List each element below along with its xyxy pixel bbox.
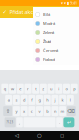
button[interactable]: y: [13, 106, 20, 116]
staticText: v: [38, 108, 40, 114]
staticText: d: [23, 97, 25, 102]
staticText: ⇧: [6, 108, 10, 114]
staticText: y: [15, 108, 17, 114]
button[interactable]: h: [44, 95, 51, 105]
staticText: Bílá: [43, 12, 50, 17]
button[interactable]: e: [17, 84, 24, 94]
staticText: □: [60, 133, 64, 138]
button[interactable]: Červená: [33, 46, 79, 55]
button[interactable]: p: [71, 84, 78, 94]
staticText: h: [46, 97, 48, 102]
button[interactable]: m: [59, 106, 66, 116]
button[interactable]: k: [59, 95, 66, 105]
button[interactable]: ?123: [5, 117, 16, 127]
staticText: ▾: [61, 1, 63, 5]
button[interactable]: r: [24, 84, 31, 94]
button[interactable]: n: [51, 106, 58, 116]
button[interactable]: w: [9, 84, 16, 94]
button[interactable]: Modrá: [33, 19, 79, 28]
staticText: Zelená: [43, 30, 54, 35]
staticText: t: [35, 86, 36, 91]
staticText: g: [38, 97, 40, 102]
button[interactable]: x: [21, 106, 28, 116]
staticText: Přidat akci: [9, 8, 34, 16]
button[interactable]: g: [36, 95, 43, 105]
button[interactable]: .: [56, 117, 63, 127]
button[interactable]: o: [63, 84, 70, 94]
staticText: e: [19, 86, 21, 91]
button[interactable]: j: [51, 95, 58, 105]
button[interactable]: ,: [16, 117, 23, 127]
staticText: ,: [19, 120, 20, 125]
button[interactable]: c: [28, 106, 35, 116]
button[interactable]: Bílá: [33, 10, 79, 19]
staticText: ⌫: [67, 108, 75, 114]
staticText: n: [54, 108, 56, 114]
button[interactable]: ⇧: [3, 106, 12, 116]
staticText: z: [42, 86, 44, 91]
staticText: f: [31, 97, 32, 102]
button[interactable]: d: [21, 95, 28, 105]
staticText: Modrá: [43, 21, 55, 26]
staticText: m: [61, 108, 65, 114]
staticText: 9:41: [70, 0, 77, 6]
staticText: Žlutá: [43, 39, 51, 44]
button[interactable]: Recents: [56, 131, 68, 140]
button[interactable]: s: [13, 95, 20, 105]
staticText: Fialová: [43, 57, 55, 62]
staticText: b: [46, 108, 48, 114]
staticText: ↵: [67, 119, 71, 125]
button[interactable]: q: [1, 84, 8, 94]
button[interactable]: l: [67, 95, 74, 105]
button[interactable]: Home: [33, 131, 45, 140]
staticText: ?123: [7, 120, 14, 124]
button[interactable]: f: [28, 95, 35, 105]
button[interactable]: b: [44, 106, 51, 116]
staticText: l: [70, 97, 71, 102]
button[interactable]: Žlutá: [33, 37, 79, 46]
button[interactable]: v: [36, 106, 43, 116]
button[interactable]: ⌫: [67, 106, 76, 116]
staticText: ✓: [2, 9, 6, 15]
button[interactable]: u: [48, 84, 55, 94]
staticText: o: [65, 86, 67, 91]
staticText: ◁: [15, 132, 19, 139]
staticText: x: [23, 108, 25, 114]
staticText: p: [73, 86, 75, 91]
button[interactable]: z: [40, 84, 47, 94]
staticText: ▮: [67, 1, 69, 5]
button[interactable]: i: [55, 84, 62, 94]
staticText: Červená: [43, 48, 58, 53]
staticText: w: [11, 86, 14, 91]
button[interactable]: t: [32, 84, 39, 94]
staticText: i: [58, 86, 59, 91]
staticText: ▾: [64, 1, 66, 5]
staticText: u: [50, 86, 52, 91]
staticText: .: [59, 120, 60, 125]
button[interactable]: Fialová: [33, 55, 79, 64]
staticText: r: [27, 86, 29, 91]
staticText: a: [8, 97, 10, 102]
staticText: c: [31, 108, 33, 114]
staticText: s: [15, 97, 17, 102]
button[interactable]: Back: [11, 131, 23, 140]
button[interactable]: a: [5, 95, 12, 105]
staticText: ○: [37, 132, 42, 139]
staticText: q: [4, 86, 6, 91]
button[interactable]: ↵: [63, 117, 74, 127]
staticText: j: [54, 97, 55, 102]
button[interactable]: Zelená: [33, 28, 79, 37]
staticText: k: [62, 97, 64, 102]
